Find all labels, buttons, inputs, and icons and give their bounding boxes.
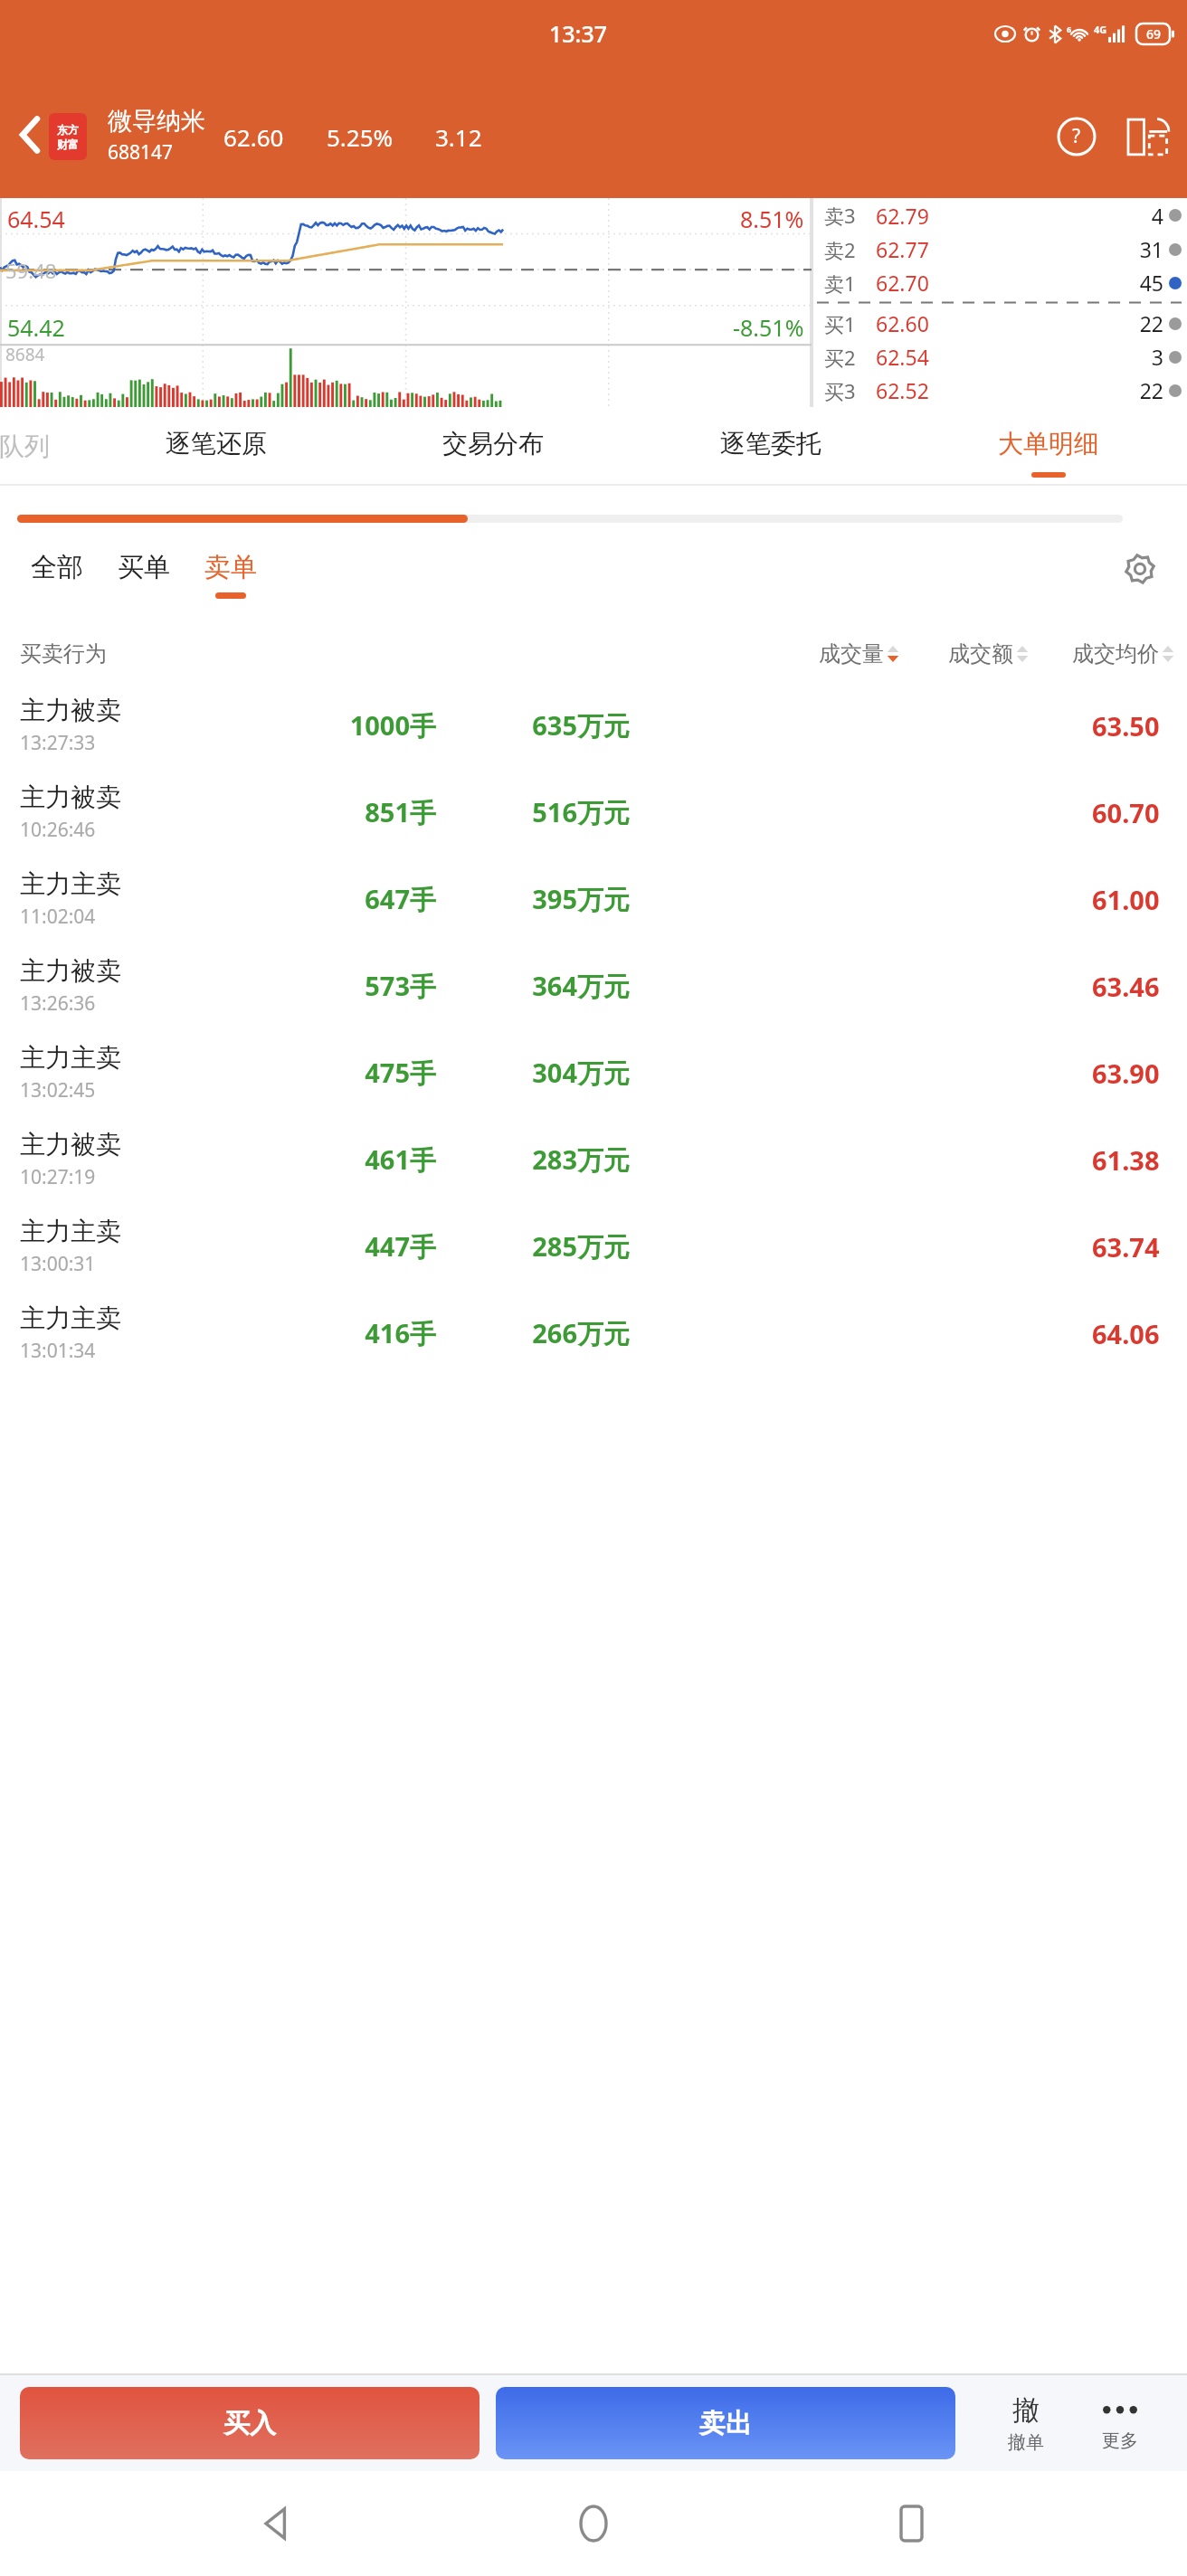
button[interactable]: 成交量 <box>819 640 899 668</box>
staticText: 主力主卖 <box>20 1216 121 1247</box>
staticText: 61.00 <box>1092 882 1160 917</box>
staticText: 卖2 <box>824 236 856 263</box>
staticText: 买单 <box>118 551 170 584</box>
button[interactable]: Help <box>1046 106 1107 167</box>
staticText: 更多 <box>1102 2429 1138 2452</box>
button[interactable]: 全部 <box>31 545 83 604</box>
staticText: 全部 <box>31 551 83 584</box>
staticText: 3 <box>1097 343 1163 371</box>
staticText: 财富 <box>57 137 79 151</box>
staticText: 64.54 <box>7 204 65 234</box>
button[interactable]: Back <box>0 90 60 180</box>
staticText: 1000手 <box>228 707 436 743</box>
staticText: 8.51% <box>740 204 804 234</box>
button[interactable]: 逐笔委托 <box>631 407 909 485</box>
staticText: 5.25% <box>327 121 394 153</box>
button[interactable]: Back <box>236 2483 318 2564</box>
staticText: 63.74 <box>1092 1229 1160 1264</box>
button[interactable]: 大单明细 <box>909 407 1187 485</box>
button[interactable]: 主力被卖 <box>0 942 1187 1029</box>
button[interactable]: 卖单 <box>204 545 257 604</box>
staticText: 475手 <box>228 1055 436 1091</box>
button[interactable]: 卖出 <box>496 2387 955 2459</box>
staticText: 主力主卖 <box>20 1302 121 1334</box>
button[interactable]: 更多 <box>1073 2375 1167 2471</box>
staticText: 逐笔委托 <box>720 428 821 459</box>
staticText: 买1 <box>824 310 856 337</box>
staticText: 283万元 <box>449 1141 630 1178</box>
staticText: 13:27:33 <box>20 730 96 756</box>
staticText: 635万元 <box>449 707 630 743</box>
button[interactable]: 主力被卖 <box>0 1116 1187 1203</box>
button[interactable]: 买入 <box>20 2387 480 2459</box>
staticText: 卖单 <box>204 551 257 584</box>
button[interactable]: 成交额 <box>948 640 1029 668</box>
staticText: 63.90 <box>1092 1056 1160 1091</box>
staticText: 22 <box>1097 376 1163 404</box>
staticText: 11:02:04 <box>20 904 96 930</box>
button[interactable]: 撤 <box>979 2375 1073 2471</box>
button[interactable]: Split screen <box>1116 106 1178 167</box>
staticText: 卖1 <box>824 270 856 297</box>
button[interactable]: 买单 <box>118 545 170 604</box>
button[interactable]: Home <box>553 2483 634 2564</box>
staticText: 4 <box>1097 202 1163 230</box>
staticText: 62.70 <box>876 269 1097 297</box>
staticText: 62.52 <box>876 376 1097 404</box>
staticText: -8.51% <box>733 312 804 343</box>
staticText: 13:26:36 <box>20 990 96 1017</box>
staticText: 主力主卖 <box>20 1042 121 1074</box>
button[interactable]: 主力主卖 <box>0 856 1187 942</box>
staticText: 大单明细 <box>998 428 1099 459</box>
staticText: 59.48 <box>5 257 57 284</box>
button[interactable]: 主力被卖 <box>0 682 1187 769</box>
staticText: 3.12 <box>435 121 482 153</box>
staticText: 416手 <box>228 1315 436 1351</box>
button[interactable]: 逐笔还原 <box>78 407 355 485</box>
staticText: 主力被卖 <box>20 1129 121 1160</box>
staticText: 成交量 <box>819 640 884 668</box>
staticText: 64.06 <box>1092 1316 1160 1351</box>
staticText: 买3 <box>824 377 856 404</box>
staticText: 31 <box>1097 235 1163 263</box>
staticText: 成交额 <box>948 640 1013 668</box>
staticText: 撤单 <box>1008 2431 1044 2454</box>
button[interactable]: 卖1 <box>812 266 1187 299</box>
staticText: 东方 <box>57 123 79 137</box>
staticText: 主力被卖 <box>20 955 121 987</box>
button[interactable]: Recents <box>870 2483 952 2564</box>
button[interactable]: 主力主卖 <box>0 1290 1187 1377</box>
staticText: 6 <box>1067 24 1072 34</box>
button[interactable]: 交易分布 <box>355 407 631 485</box>
button[interactable]: 主力被卖 <box>0 769 1187 856</box>
staticText: 队列 <box>0 431 50 462</box>
staticText: ? <box>1072 123 1081 149</box>
button[interactable]: 主力主卖 <box>0 1029 1187 1116</box>
button[interactable]: 卖3 <box>812 198 1187 232</box>
button[interactable]: 买3 <box>812 374 1187 407</box>
button[interactable]: 成交均价 <box>1072 640 1174 668</box>
button[interactable]: 买2 <box>812 340 1187 374</box>
staticText: 688147 <box>108 139 174 166</box>
staticText: 卖出 <box>699 2407 752 2440</box>
staticText: 61.38 <box>1092 1142 1160 1178</box>
staticText: 364万元 <box>449 968 630 1004</box>
staticText: 266万元 <box>449 1315 630 1351</box>
button[interactable]: 主力主卖 <box>0 1203 1187 1290</box>
staticText: 买2 <box>824 344 856 371</box>
staticText: 成交均价 <box>1072 640 1159 668</box>
staticText: 447手 <box>228 1228 436 1264</box>
staticText: 主力被卖 <box>20 781 121 813</box>
staticText: 买卖行为 <box>20 640 107 668</box>
staticText: 4G <box>1094 23 1107 36</box>
staticText: 买入 <box>223 2407 276 2440</box>
staticText: 285万元 <box>449 1228 630 1264</box>
button[interactable]: Settings <box>1113 542 1167 596</box>
button[interactable]: 卖2 <box>812 232 1187 266</box>
staticText: 62.77 <box>876 235 1097 263</box>
staticText: 22 <box>1097 309 1163 337</box>
button[interactable]: 队列 <box>0 407 78 485</box>
staticText: 62.60 <box>223 121 284 153</box>
staticText: 45 <box>1097 269 1163 297</box>
button[interactable]: 买1 <box>812 307 1187 340</box>
